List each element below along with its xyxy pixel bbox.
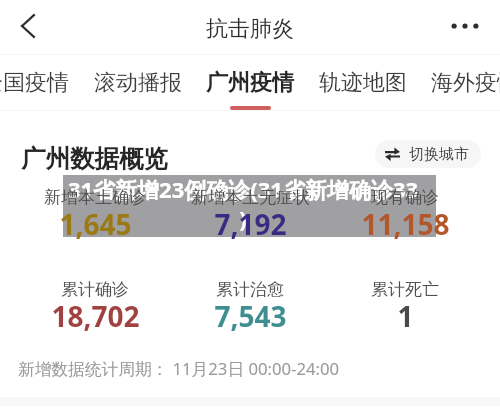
staticText: 新增本土确诊 (44, 187, 146, 208)
staticText: 累计治愈 (216, 279, 284, 300)
staticText: 1,645 (59, 205, 132, 243)
staticText: 现有确诊 (371, 187, 439, 208)
staticText: 累计确诊 (61, 279, 129, 300)
staticText: 抗击肺炎 (206, 15, 294, 43)
staticText: 7,192 (214, 205, 287, 243)
button[interactable]: 滚动播报 (82, 55, 194, 111)
staticText: 切换城市 (409, 145, 469, 164)
staticText: 全国疫情 (0, 69, 69, 97)
button[interactable]: Back (6, 6, 50, 50)
staticText: 海外疫情 (431, 69, 500, 97)
staticText: 新增数据统计周期： 11月23日 00:00-24:00 (18, 357, 340, 380)
button[interactable]: 切换城市 (375, 140, 481, 168)
staticText: 轨迹地图 (319, 69, 407, 97)
staticText: 1 (397, 297, 414, 335)
staticText: 18,702 (51, 297, 140, 335)
staticText: 新增本土无症状 (191, 187, 310, 208)
staticText: 31省新增23例确诊(31省新增确诊33 ) (66, 174, 420, 233)
button[interactable]: 轨迹地图 (307, 55, 419, 111)
button[interactable]: 广州疫情 (194, 55, 306, 111)
staticText: 7,543 (214, 297, 287, 335)
button[interactable]: More options (443, 6, 487, 50)
staticText: 11,158 (361, 205, 450, 243)
button[interactable]: 全国疫情 (0, 55, 81, 111)
staticText: 滚动播报 (94, 69, 182, 97)
staticText: 广州数据概览 (21, 143, 168, 174)
button[interactable]: 海外疫情 (419, 55, 500, 111)
staticText: 累计死亡 (371, 279, 439, 300)
staticText: 广州疫情 (206, 69, 294, 97)
